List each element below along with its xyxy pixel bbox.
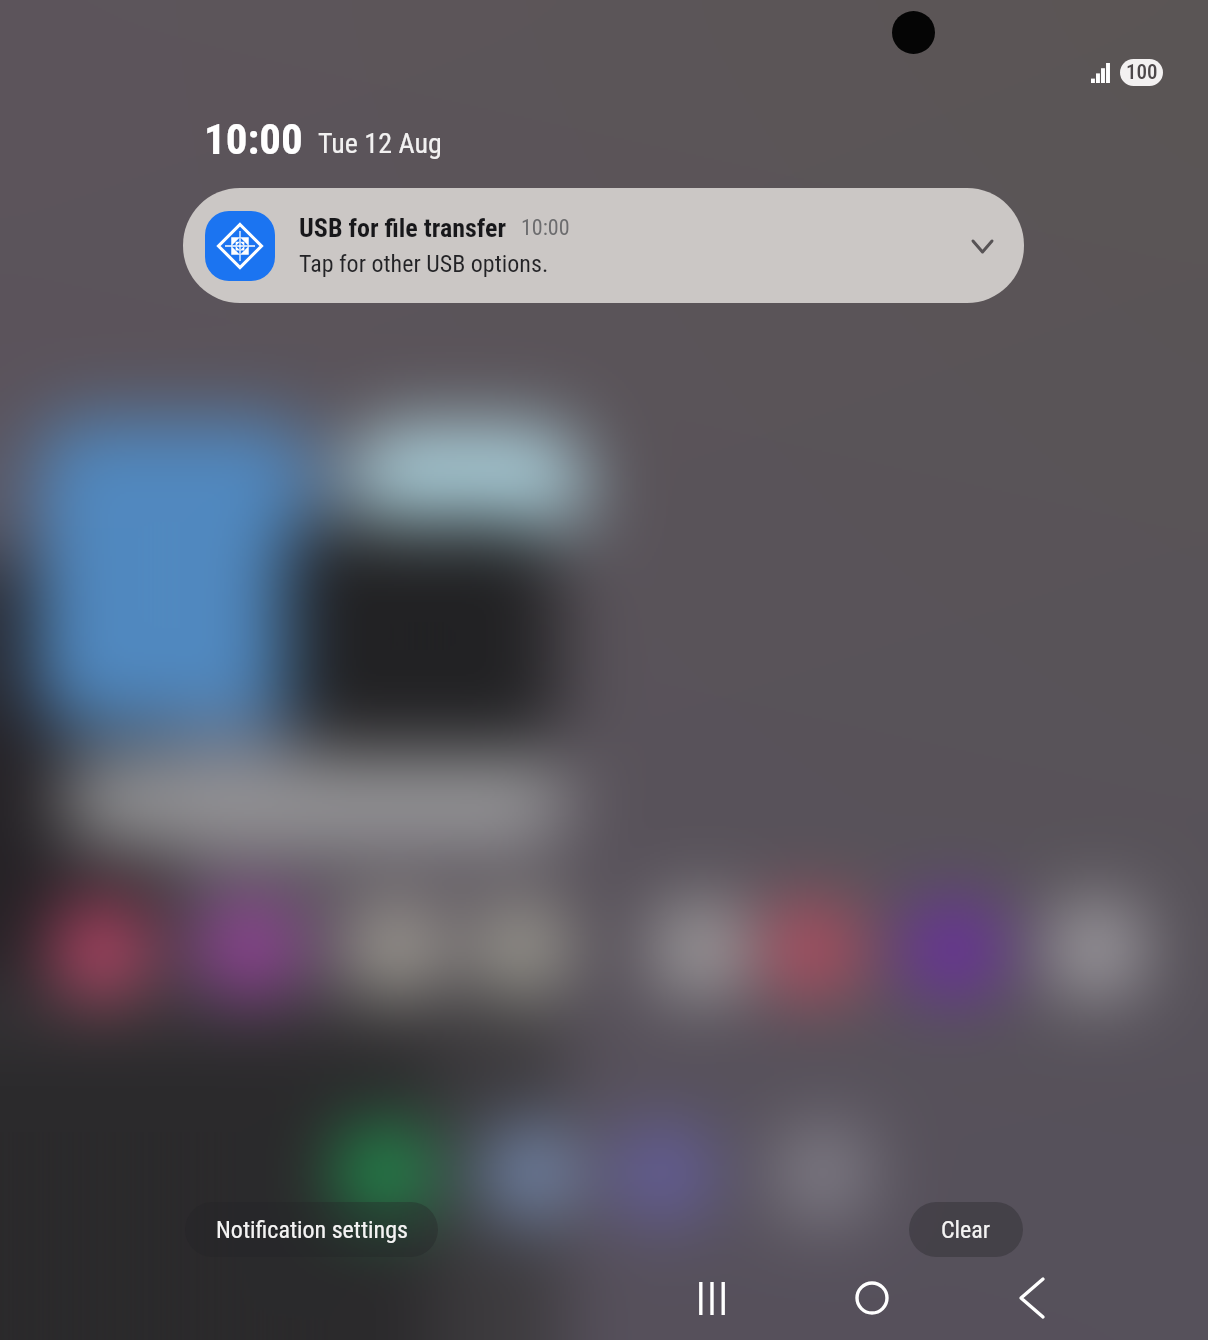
staticText: Tue 12 Aug [318,127,442,160]
staticText: Notification settings [216,1216,408,1244]
button[interactable]: Home [792,1256,952,1340]
button[interactable]: Recents [632,1256,792,1340]
button[interactable]: USB for file transfer [183,188,1024,303]
staticText: 10:00 [521,215,570,241]
staticText: USB for file transfer [299,213,507,243]
button[interactable]: Back [952,1256,1112,1340]
staticText: Tap for other USB options. [299,250,549,278]
staticText: Clear [941,1216,991,1244]
button[interactable]: Notification settings [185,1202,438,1257]
staticText: 10:00 [204,114,303,164]
button[interactable]: Expand notification [951,215,1013,277]
staticText: 100 [1126,60,1158,85]
button[interactable]: Clear [909,1202,1023,1257]
